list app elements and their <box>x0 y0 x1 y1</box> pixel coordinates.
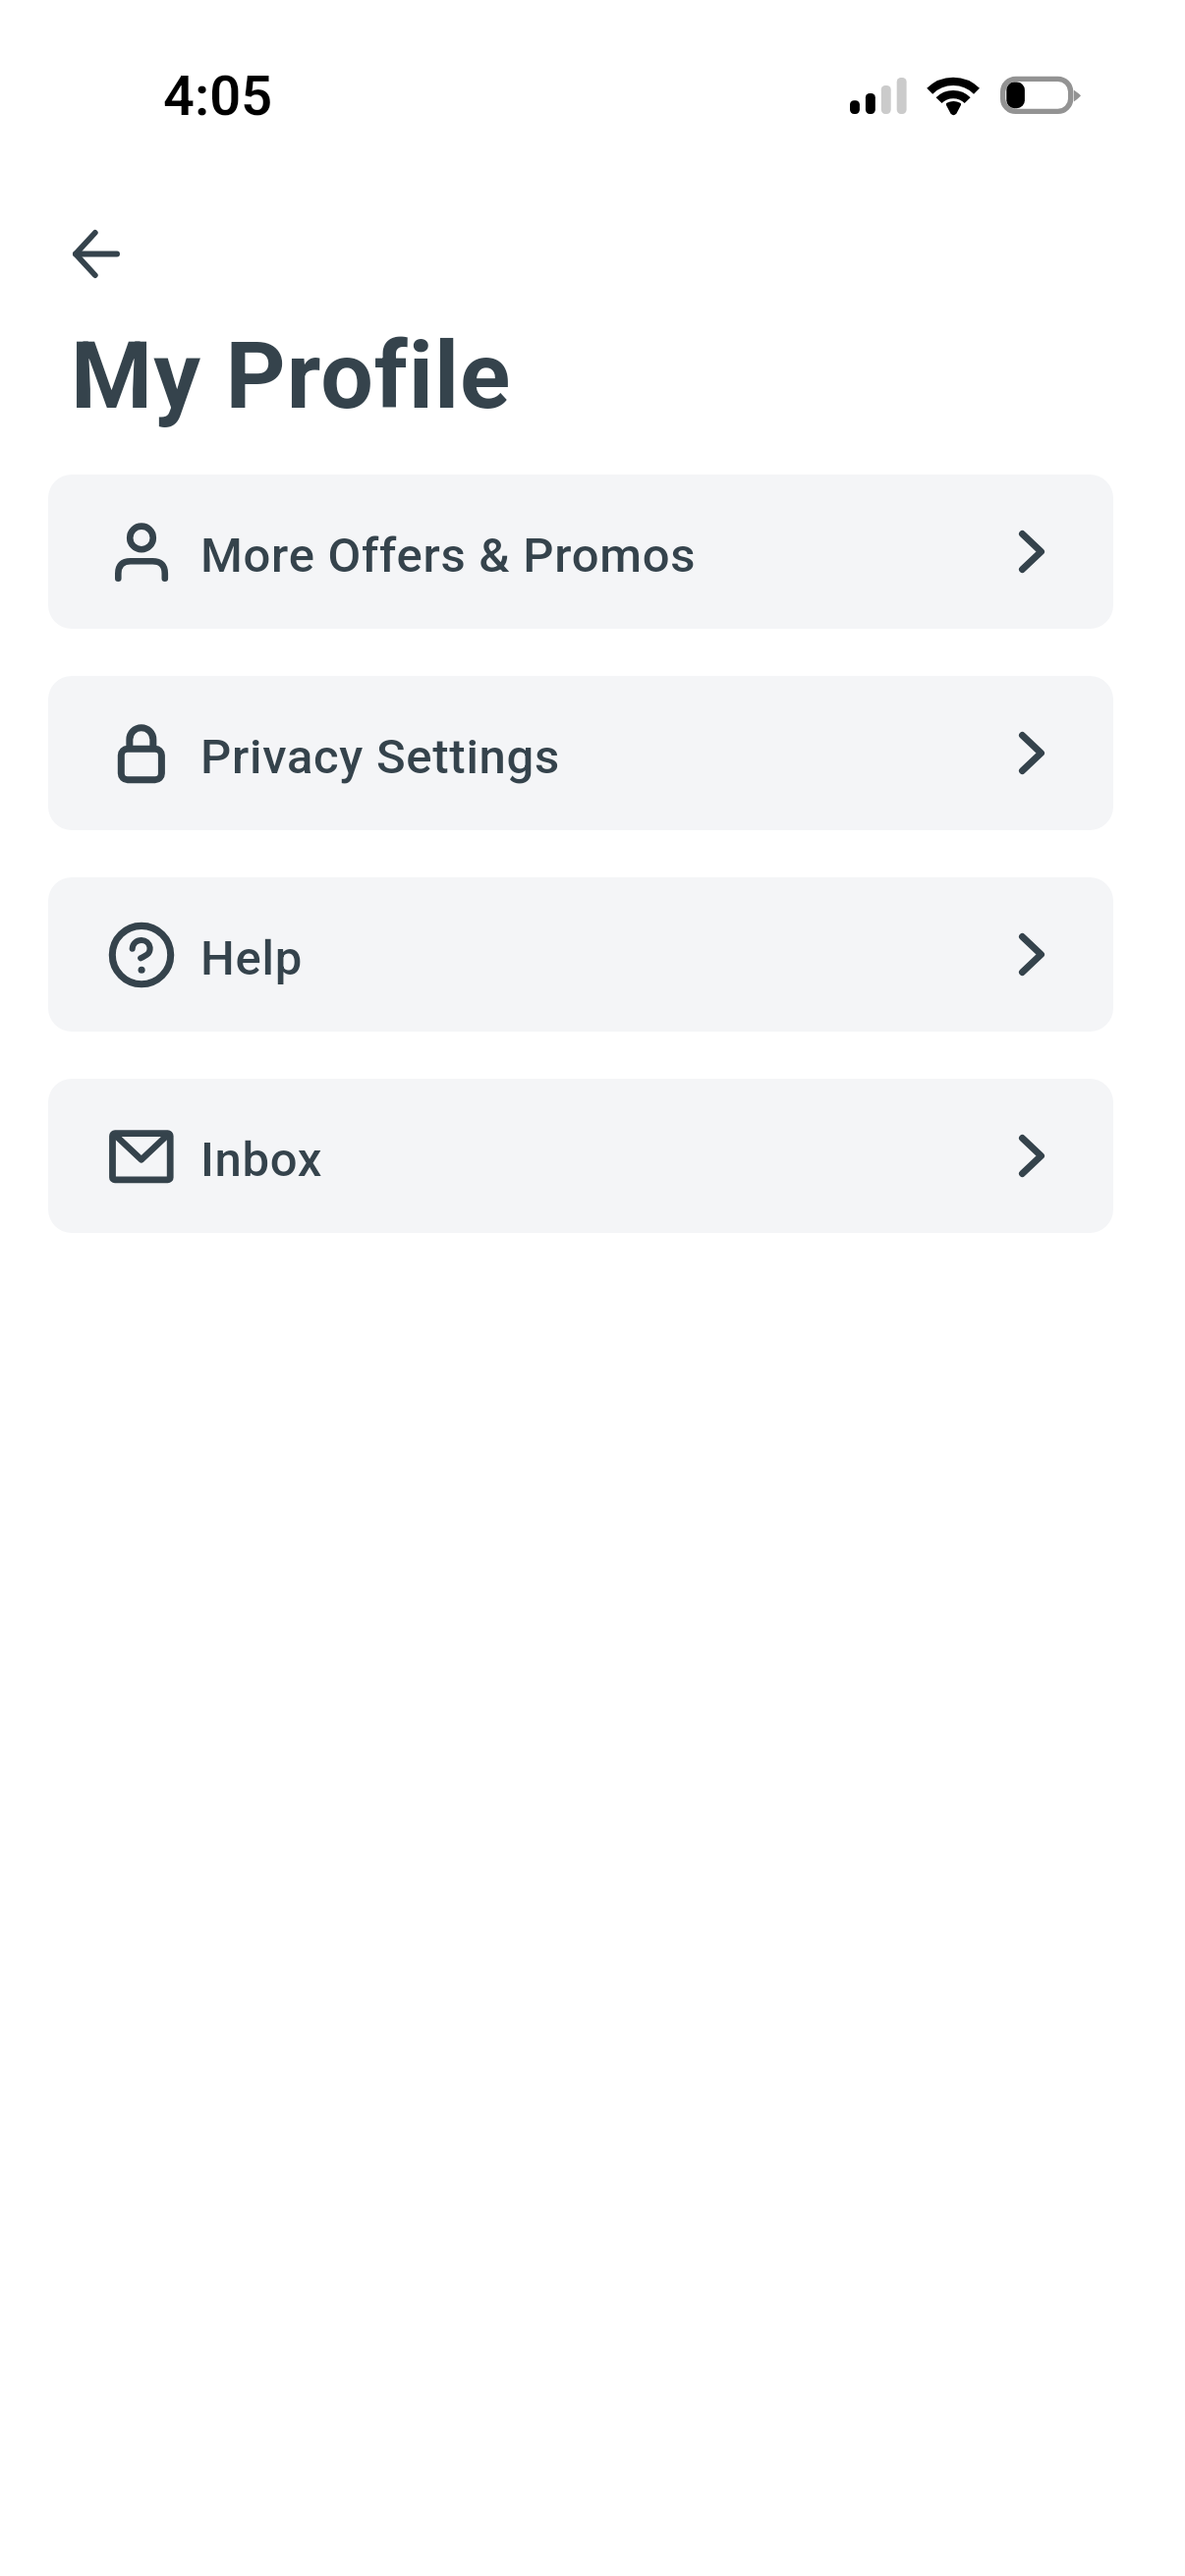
button[interactable]: Privacy Settings <box>48 676 1113 830</box>
staticText: Help <box>200 931 303 986</box>
staticText: More Offers & Promos <box>200 529 697 584</box>
staticText: Inbox <box>200 1133 323 1188</box>
staticText: 4:05 <box>163 68 273 127</box>
staticText: My Profile <box>71 322 512 430</box>
button[interactable]: Back <box>49 207 143 301</box>
staticText: Privacy Settings <box>200 730 561 785</box>
button[interactable]: Inbox <box>48 1079 1113 1233</box>
button[interactable]: Help <box>48 877 1113 1032</box>
button[interactable]: More Offers & Promos <box>48 475 1113 629</box>
